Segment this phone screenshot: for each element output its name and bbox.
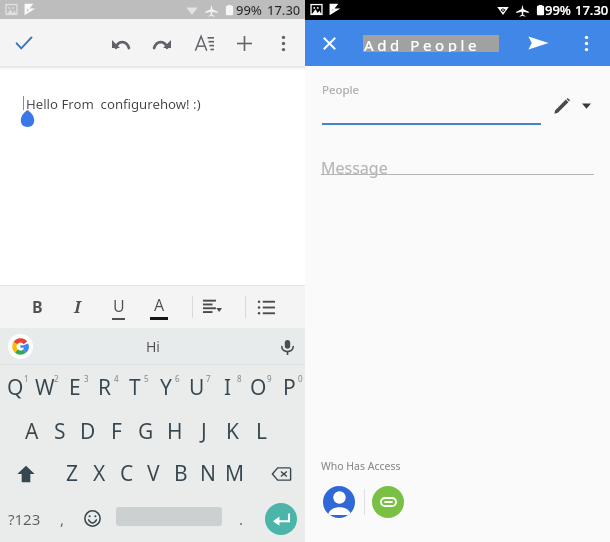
button[interactable]: X (86, 452, 113, 495)
staticText: ?123 (8, 509, 41, 529)
staticText: Y (160, 373, 172, 402)
staticText: W (35, 373, 55, 402)
staticText: 2 (54, 373, 59, 384)
staticText: I (74, 295, 81, 318)
staticText: X (93, 459, 106, 488)
staticText: H (167, 417, 183, 446)
button[interactable]: Link sharing (372, 486, 404, 518)
button[interactable]: Emoji (77, 495, 107, 542)
button[interactable]: O (243, 365, 274, 410)
button[interactable]: S (46, 410, 74, 452)
button[interactable]: Z (58, 452, 86, 495)
button[interactable]: F (102, 410, 131, 452)
button[interactable]: Bulleted list (249, 290, 283, 324)
staticText: A (25, 417, 39, 446)
staticText: Message (321, 157, 388, 179)
button[interactable]: C (113, 452, 140, 495)
button[interactable]: Voice input (273, 333, 301, 361)
button[interactable]: I (60, 290, 94, 324)
staticText: A (154, 294, 165, 316)
staticText: 17.30 (575, 1, 609, 19)
button[interactable]: ?123 (2, 495, 46, 542)
staticText: I (224, 373, 232, 402)
button[interactable]: T (120, 365, 150, 410)
staticText: G (138, 417, 154, 446)
staticText: U (113, 295, 125, 317)
button[interactable]: Redo (144, 25, 180, 61)
staticText: Who Has Access (321, 459, 401, 473)
staticText: 6 (175, 373, 180, 384)
staticText: 17.30 (267, 1, 301, 19)
staticText: F (111, 417, 122, 446)
button[interactable]: M (221, 452, 248, 495)
staticText: U (189, 373, 205, 402)
button[interactable]: N (194, 452, 221, 495)
button[interactable]: More options (570, 27, 602, 59)
staticText: Hello From configurehow! :) (26, 95, 201, 113)
button[interactable]: K (218, 410, 247, 452)
staticText: . (239, 509, 244, 529)
button[interactable]: Done (6, 25, 42, 61)
button[interactable]: More options (265, 25, 301, 61)
button[interactable]: G (131, 410, 160, 452)
button[interactable]: U (181, 365, 212, 410)
staticText: B (32, 296, 43, 318)
button[interactable]: Close (311, 25, 347, 61)
staticText: 8 (237, 373, 242, 384)
button[interactable]: Add People (363, 35, 499, 52)
staticText: Add People (364, 35, 481, 52)
button[interactable]: Paragraph alignment (195, 290, 229, 324)
staticText: 99% (545, 1, 571, 19)
button[interactable]: W (30, 365, 60, 410)
staticText: 5 (144, 373, 149, 384)
staticText: V (147, 459, 160, 488)
staticText: , (60, 509, 65, 529)
button[interactable]: U (101, 290, 135, 324)
staticText: S (54, 417, 66, 446)
button[interactable]: J (189, 410, 218, 452)
button[interactable]: L (247, 410, 276, 452)
button[interactable]: Text formatting (186, 25, 222, 61)
staticText: L (256, 417, 268, 446)
button[interactable]: D (74, 410, 102, 452)
staticText: Q (7, 373, 24, 402)
staticText: Hi (146, 337, 160, 356)
staticText: E (69, 373, 81, 402)
button[interactable]: Undo (103, 25, 139, 61)
staticText: J (201, 417, 207, 446)
button[interactable]: Space (107, 493, 231, 540)
button[interactable]: A (18, 410, 46, 452)
staticText: O (250, 373, 267, 402)
button[interactable]: I (212, 365, 243, 410)
button[interactable]: Enter (257, 495, 305, 542)
staticText: 7 (206, 373, 211, 384)
button[interactable]: Shift (0, 452, 58, 495)
staticText: M (225, 459, 245, 488)
button[interactable]: Insert (226, 25, 262, 61)
button[interactable]: Q (0, 365, 30, 410)
button[interactable]: Backspace (248, 452, 305, 495)
button[interactable]: H (160, 410, 189, 452)
staticText: T (129, 373, 141, 402)
button[interactable]: Send (520, 25, 556, 61)
button[interactable]: Google search (8, 334, 33, 359)
button[interactable]: P (274, 365, 305, 410)
staticText: C (120, 459, 134, 488)
button[interactable]: V (140, 452, 167, 495)
button[interactable]: , (47, 495, 77, 542)
staticText: People (322, 82, 359, 98)
button[interactable]: E (60, 365, 90, 410)
staticText: 0 (298, 373, 303, 384)
button[interactable]: Owner (323, 486, 355, 518)
button[interactable]: . (228, 495, 254, 542)
button[interactable]: A (142, 290, 176, 324)
staticText: P (283, 373, 296, 402)
button[interactable]: B (167, 452, 194, 495)
button[interactable]: R (90, 365, 120, 410)
button[interactable]: B (20, 290, 54, 324)
staticText: 99% (236, 1, 262, 19)
button[interactable]: Y (150, 365, 181, 410)
staticText: N (200, 459, 216, 488)
staticText: D (80, 417, 96, 446)
staticText: Z (66, 459, 79, 488)
